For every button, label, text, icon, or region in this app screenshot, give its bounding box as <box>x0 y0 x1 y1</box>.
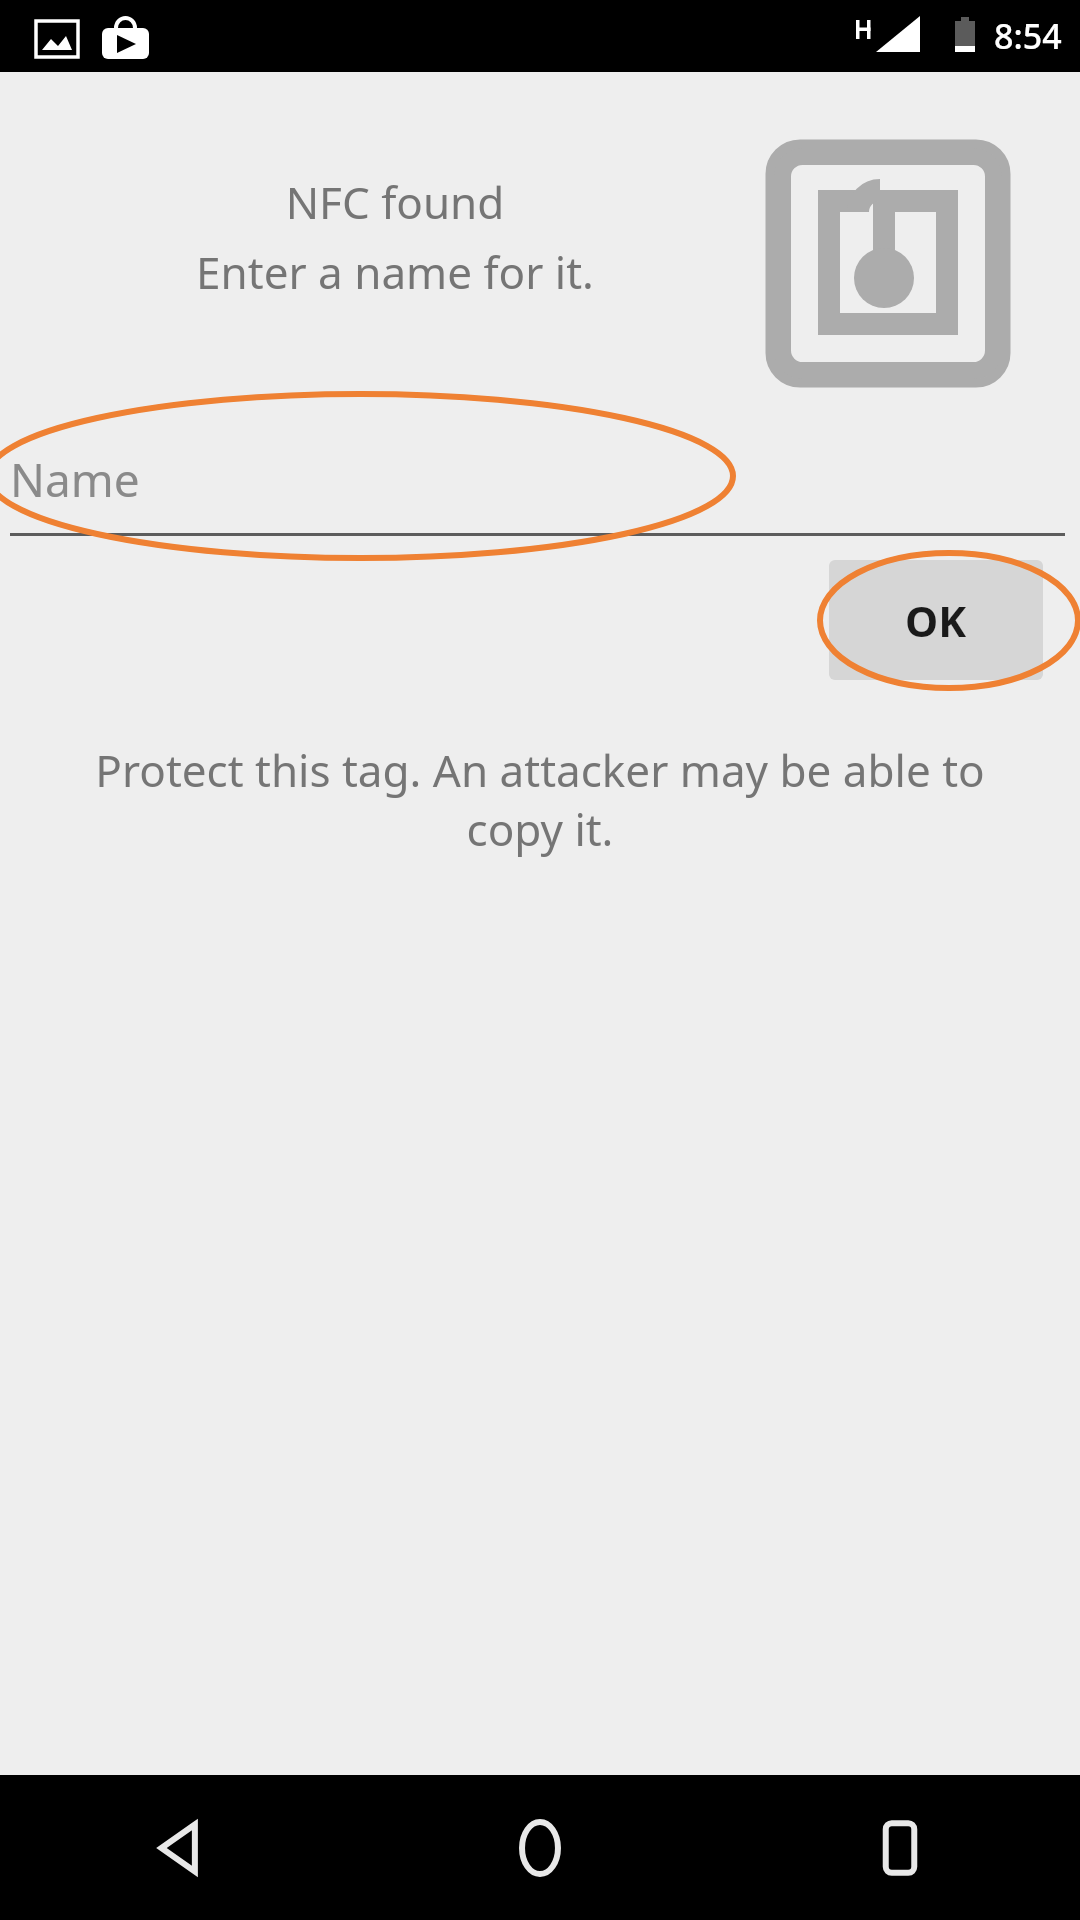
staticText: 8:54 <box>994 13 1062 59</box>
staticText: OK <box>905 592 967 649</box>
staticText: NFC found Enter a name for it. <box>60 172 730 302</box>
button[interactable]: Home <box>360 1775 720 1920</box>
button[interactable]: OK <box>829 560 1043 680</box>
staticText: Name <box>10 448 140 511</box>
other: NFC tag <box>774 148 1002 379</box>
button[interactable]: Recent apps <box>720 1775 1080 1920</box>
button[interactable]: Name <box>0 430 1070 540</box>
button[interactable]: Back <box>0 1775 360 1920</box>
staticText: Protect this tag. An attacker may be abl… <box>60 740 1020 858</box>
